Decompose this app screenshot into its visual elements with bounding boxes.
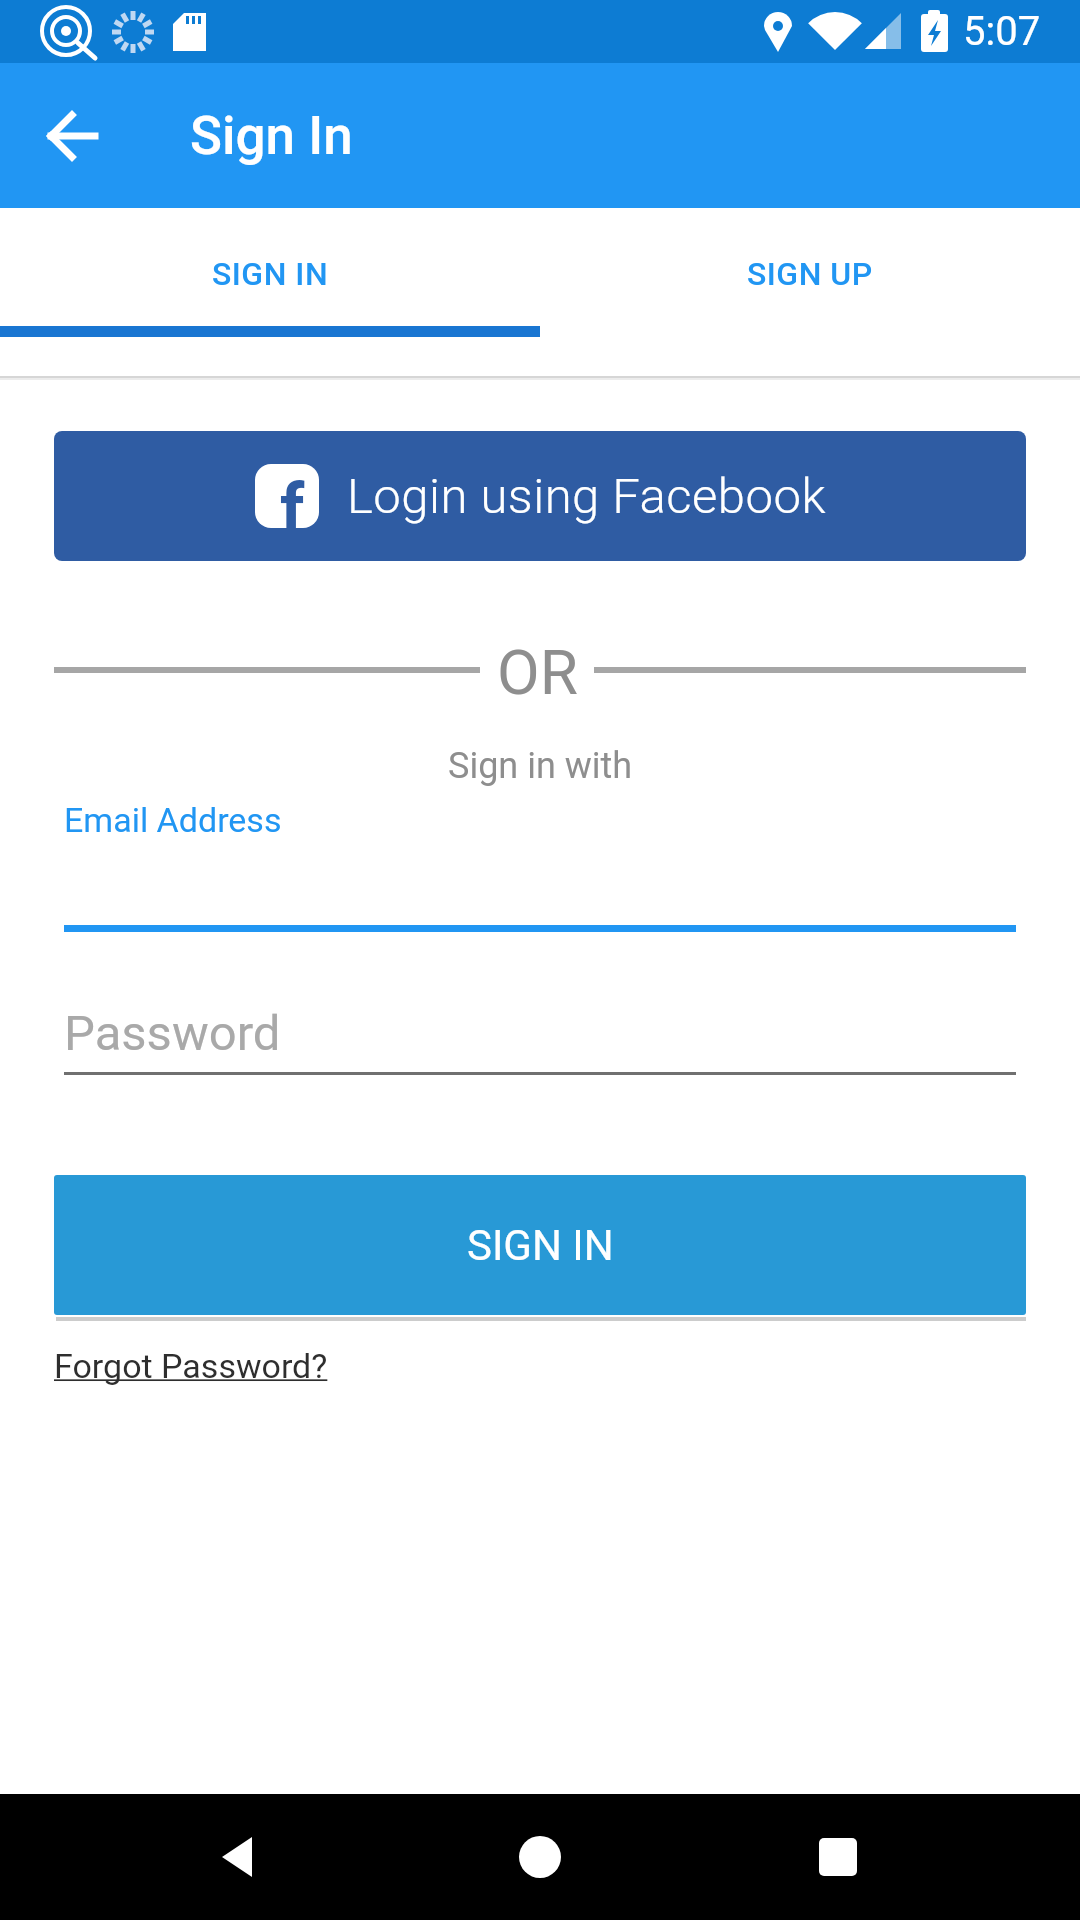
button[interactable]: [192, 1809, 288, 1905]
staticText: Password: [64, 1005, 281, 1062]
staticText: SIGN IN: [212, 255, 329, 293]
button[interactable]: SIGN UP: [540, 211, 1080, 337]
staticText: f: [280, 469, 305, 528]
button[interactable]: SIGN IN: [0, 211, 540, 337]
staticText: OR: [497, 636, 578, 709]
button[interactable]: f: [54, 431, 1026, 561]
button[interactable]: [25, 88, 121, 184]
button[interactable]: Email Address: [64, 800, 1016, 932]
staticText: Email Address: [64, 800, 282, 840]
staticText: Sign In: [190, 105, 353, 167]
staticText: SIGN UP: [747, 255, 873, 293]
button[interactable]: Password: [64, 1005, 1016, 1075]
button[interactable]: SIGN IN: [54, 1175, 1026, 1315]
button[interactable]: Forgot Password?: [54, 1340, 328, 1392]
staticText: Login using Facebook: [347, 468, 826, 525]
button[interactable]: [492, 1809, 588, 1905]
staticText: SIGN IN: [467, 1221, 614, 1270]
staticText: 5:07: [963, 8, 1041, 55]
staticText: Sign in with: [448, 745, 633, 787]
staticText: Forgot Password?: [54, 1346, 328, 1386]
button[interactable]: [790, 1809, 886, 1905]
